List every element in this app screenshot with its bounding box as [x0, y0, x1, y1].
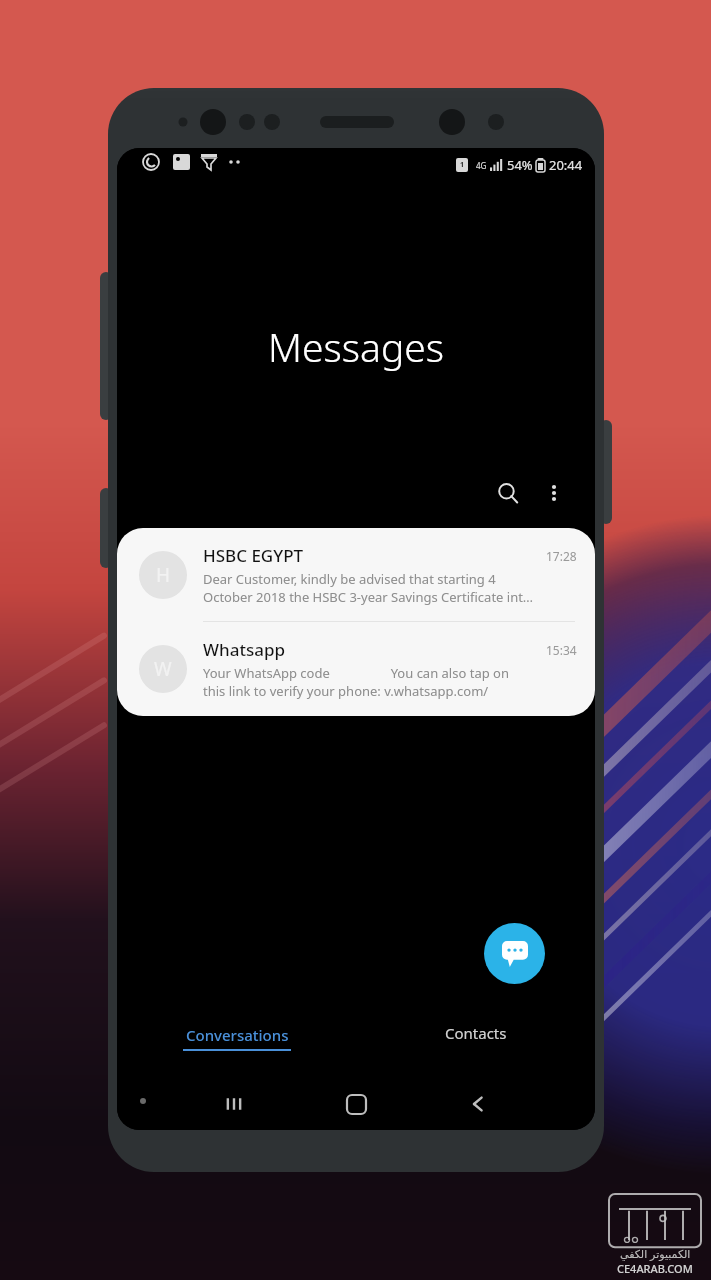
staticText: Contacts	[445, 1023, 507, 1043]
staticText: CE4ARAB.COM	[617, 1261, 693, 1276]
staticText: Whatsapp	[203, 638, 546, 661]
staticText: 15:34	[546, 642, 577, 658]
button[interactable]: Recents	[173, 1078, 295, 1130]
button[interactable]: More options	[531, 470, 577, 516]
staticText: Dear Customer, kindly be advised that st…	[203, 570, 496, 588]
staticText: 4G	[476, 160, 487, 171]
staticText: HSBC EGYPT	[203, 544, 546, 567]
staticText: Messages	[117, 320, 595, 373]
button[interactable]: W	[117, 622, 595, 716]
button[interactable]: Conversations	[117, 1016, 356, 1060]
staticText: 1	[460, 160, 465, 170]
button[interactable]: Contacts	[356, 1016, 595, 1060]
staticText: this link to verify your phone: v.whatsa…	[203, 682, 489, 700]
staticText: 20:44	[549, 156, 583, 174]
button[interactable]: Search	[485, 470, 531, 516]
staticText: H	[156, 562, 171, 588]
staticText: Conversations	[186, 1025, 289, 1045]
button[interactable]: New conversation	[484, 923, 545, 984]
staticText: 17:28	[546, 548, 577, 564]
staticText: الكمبيوتر الكفي	[620, 1246, 691, 1261]
button[interactable]: H	[117, 528, 595, 621]
staticText: W	[154, 656, 172, 682]
button[interactable]: Back	[417, 1078, 539, 1130]
staticText: October 2018 the HSBC 3-year Savings Cer…	[203, 588, 534, 606]
staticText: Your WhatsApp code You can also tap on	[203, 664, 509, 682]
staticText: 54%	[507, 156, 533, 174]
button[interactable]: Home	[295, 1078, 417, 1130]
